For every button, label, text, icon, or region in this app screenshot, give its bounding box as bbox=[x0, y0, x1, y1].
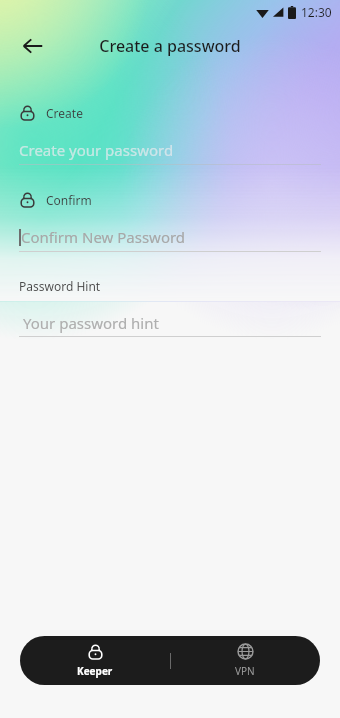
staticText: Password Hint bbox=[19, 278, 101, 294]
button[interactable]: Create your password bbox=[19, 136, 321, 164]
button[interactable]: Keeper bbox=[20, 636, 170, 685]
staticText: Create your password bbox=[19, 140, 174, 160]
staticText: Confirm New Password bbox=[21, 227, 186, 247]
staticText: Create bbox=[46, 105, 83, 121]
staticText: Create a password bbox=[99, 35, 241, 57]
button[interactable]: Your password hint bbox=[19, 310, 321, 336]
staticText: Your password hint bbox=[23, 313, 159, 333]
button[interactable]: Back bbox=[14, 27, 52, 65]
staticText: VPN bbox=[235, 664, 255, 678]
staticText: Keeper bbox=[77, 664, 113, 678]
button[interactable]: VPN bbox=[170, 636, 320, 685]
staticText: 12:30 bbox=[301, 4, 332, 20]
staticText: Confirm bbox=[46, 192, 92, 208]
button[interactable]: Confirm New Password bbox=[19, 223, 321, 251]
